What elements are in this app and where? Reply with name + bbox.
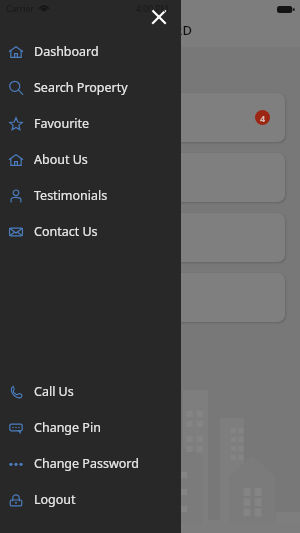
button[interactable]: Contact Us [0,213,181,249]
button[interactable]: Close navigation drawer [148,6,170,28]
button[interactable]: 4 [14,93,285,142]
button[interactable]: Logout [0,481,181,517]
staticText: About Us [34,151,88,168]
button[interactable] [14,213,285,262]
button[interactable]: Call Us [0,373,181,409]
staticText: Search Property [34,79,128,96]
staticText: 4:00 PM [136,3,169,15]
button[interactable] [14,153,285,202]
button[interactable]: Dashboard [0,33,181,69]
staticText: Change Pin [34,419,101,436]
button[interactable] [14,273,285,322]
staticText: Carrier [6,3,34,15]
button[interactable]: Testimonials [0,177,181,213]
staticText: DASHBOARD [111,21,193,39]
staticText: Testimonials [34,187,108,204]
button[interactable]: Change Password [0,445,181,481]
staticText: Change Password [34,455,139,472]
staticText: Favourite [34,115,90,132]
button[interactable]: Change Pin [0,409,181,445]
staticText: Dashboard [34,43,99,60]
staticText: Logout [34,491,76,508]
staticText: Call Us [34,383,74,400]
staticText: 4 [260,112,266,124]
button[interactable]: Search Property [0,69,181,105]
button[interactable]: About Us [0,141,181,177]
button[interactable]: Favourite [0,105,181,141]
staticText: Contact Us [34,223,98,240]
